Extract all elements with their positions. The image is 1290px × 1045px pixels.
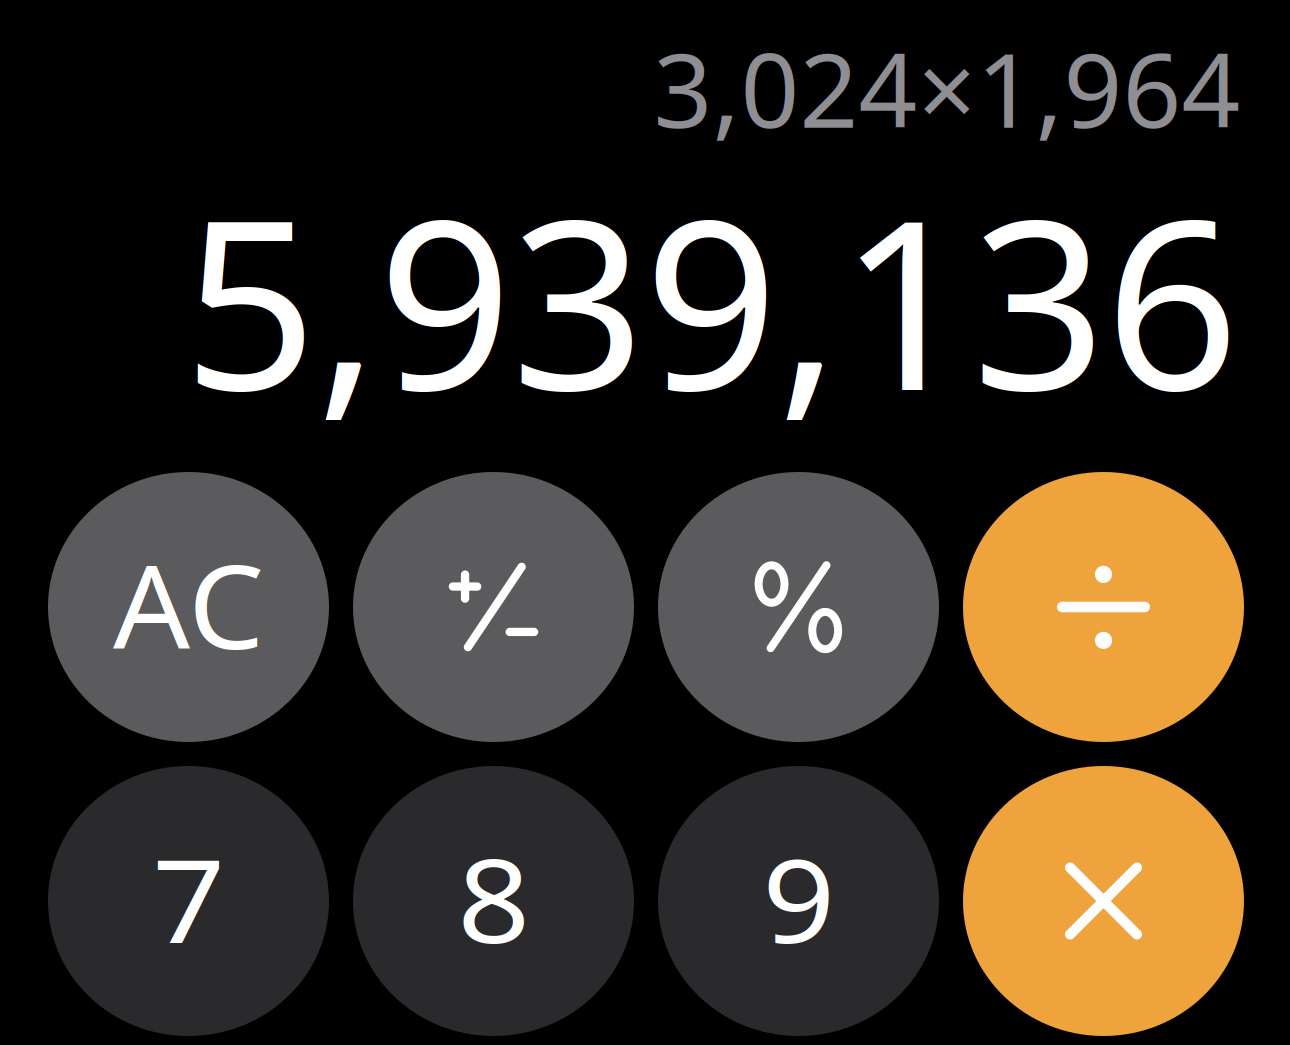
- staticText: 8: [460, 821, 526, 975]
- staticText: 9: [765, 821, 831, 975]
- button[interactable]: Plus minus: [353, 472, 634, 742]
- button[interactable]: AC: [48, 472, 329, 742]
- staticText: AC: [116, 527, 261, 681]
- button[interactable]: 9: [658, 766, 939, 1036]
- staticText: 7: [155, 821, 221, 975]
- button[interactable]: 8: [353, 766, 634, 1036]
- button[interactable]: Multiply: [963, 766, 1244, 1036]
- button[interactable]: 7: [48, 766, 329, 1036]
- button[interactable]: Divide: [963, 472, 1244, 742]
- button[interactable]: Percent: [658, 472, 939, 742]
- staticText: 5,939,136: [183, 143, 1239, 455]
- staticText: 3,024×1,964: [653, 20, 1240, 156]
